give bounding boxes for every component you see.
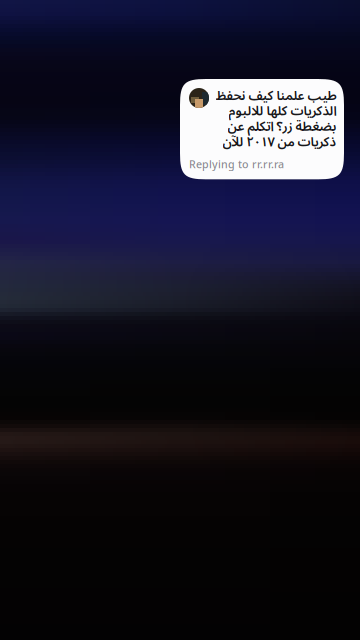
staticText: بضغطة زر؟ اتكلم عن	[227, 119, 336, 134]
staticText: طيب علمنا كيف نحفظ	[215, 88, 336, 103]
staticText: الذكريات كلها للالبوم	[228, 103, 336, 119]
button[interactable]: طيب علمنا كيف نحفظ	[180, 79, 344, 179]
staticText: Replying to rr.rr.ra	[189, 157, 284, 171]
staticText: ذكريات من ٢٠١٧ للآن	[222, 134, 336, 150]
